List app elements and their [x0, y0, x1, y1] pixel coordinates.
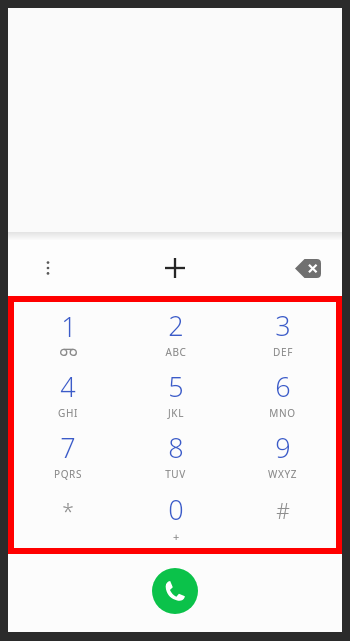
staticText: TUV [165, 467, 186, 481]
staticText: 5 [168, 368, 184, 405]
staticText: 8 [168, 429, 184, 466]
button[interactable]: 4 [14, 363, 122, 424]
button[interactable]: Backspace [286, 246, 330, 290]
button[interactable]: 9 [229, 424, 336, 486]
staticText: 0 [168, 491, 184, 528]
staticText: 3 [275, 307, 291, 344]
button[interactable]: 6 [229, 363, 336, 424]
button[interactable]: 0 [122, 486, 229, 548]
button[interactable]: 5 [122, 363, 229, 424]
staticText: # [276, 497, 290, 526]
button[interactable]: * [14, 486, 122, 548]
button[interactable]: 8 [122, 424, 229, 486]
button[interactable]: 7 [14, 424, 122, 486]
button[interactable]: Call [152, 568, 198, 614]
staticText: GHI [58, 406, 78, 420]
button[interactable]: 1 [14, 302, 122, 363]
staticText: 9 [275, 429, 291, 466]
staticText: JKL [168, 406, 184, 420]
staticText: MNO [269, 406, 296, 420]
staticText: ABC [165, 345, 187, 359]
button[interactable]: 3 [229, 302, 336, 363]
button[interactable]: 2 [122, 302, 229, 363]
button[interactable]: # [229, 486, 336, 548]
staticText: 6 [275, 368, 291, 405]
staticText: * [62, 497, 74, 526]
staticText: 2 [168, 307, 184, 344]
staticText: 1 [61, 308, 77, 345]
staticText: + [173, 529, 180, 544]
staticText: 7 [60, 429, 76, 466]
staticText: PQRS [54, 467, 82, 481]
button[interactable]: Add [153, 246, 197, 290]
button[interactable]: More options [26, 246, 70, 290]
staticText: DEF [273, 345, 293, 359]
staticText: WXYZ [268, 467, 297, 481]
staticText: 4 [60, 368, 76, 405]
